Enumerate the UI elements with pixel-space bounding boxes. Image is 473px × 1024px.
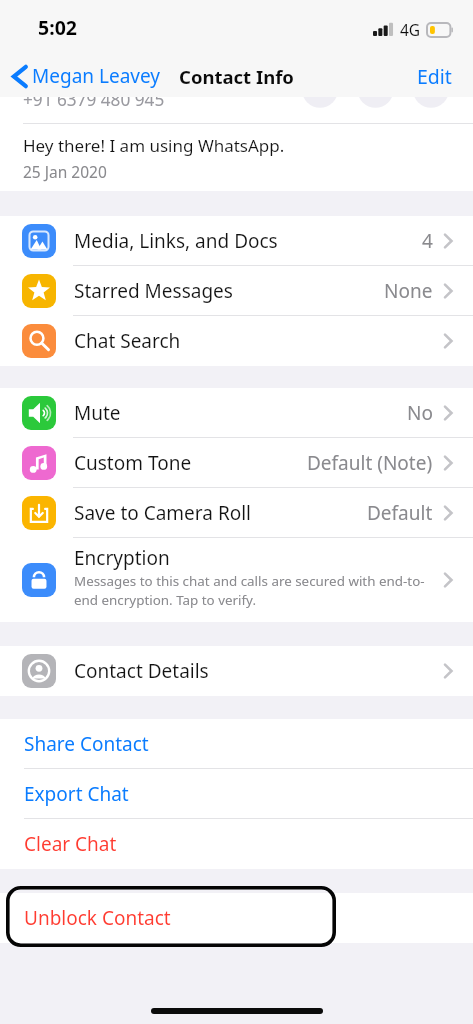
- button[interactable]: Chat Search: [0, 316, 473, 366]
- staticText: Media, Links, and Docs: [74, 228, 278, 254]
- staticText: No: [407, 400, 433, 426]
- staticText: Custom Tone: [74, 450, 192, 476]
- staticText: 25 Jan 2020: [23, 161, 107, 182]
- staticText: Unblock Contact: [24, 905, 171, 931]
- staticText: 4G: [400, 19, 421, 40]
- staticText: Export Chat: [24, 781, 129, 807]
- button[interactable]: Megan Leavey: [0, 59, 168, 93]
- staticText: Share Contact: [24, 731, 149, 757]
- staticText: Hey there! I am using WhatsApp.: [23, 134, 285, 157]
- button[interactable]: Encryption: [0, 538, 473, 622]
- button[interactable]: Contact Details: [0, 646, 473, 696]
- staticText: Chat Search: [74, 328, 181, 354]
- button[interactable]: Edit: [397, 57, 473, 96]
- button[interactable]: Export Chat: [0, 769, 473, 819]
- staticText: Save to Camera Roll: [74, 500, 252, 526]
- staticText: Edit: [417, 63, 452, 90]
- staticText: Default (Note): [307, 450, 433, 476]
- staticText: Default: [367, 500, 433, 526]
- button[interactable]: Custom Tone: [0, 438, 473, 488]
- staticText: Megan Leavey: [32, 63, 160, 89]
- staticText: None: [384, 278, 433, 304]
- button[interactable]: Share Contact: [0, 719, 473, 769]
- button[interactable]: Mute: [0, 388, 473, 438]
- staticText: Messages to this chat and calls are secu…: [74, 572, 433, 609]
- staticText: Contact Info: [179, 64, 294, 89]
- staticText: 4: [422, 228, 433, 254]
- button[interactable]: Starred Messages: [0, 266, 473, 316]
- staticText: Clear Chat: [24, 831, 117, 857]
- staticText: +91 6379 480 945: [23, 97, 165, 111]
- button[interactable]: Media, Links, and Docs: [0, 216, 473, 266]
- button[interactable]: Save to Camera Roll: [0, 488, 473, 538]
- staticText: Contact Details: [74, 658, 209, 684]
- staticText: Starred Messages: [74, 278, 233, 304]
- button[interactable]: Clear Chat: [0, 819, 473, 869]
- button[interactable]: Unblock Contact: [0, 893, 473, 943]
- staticText: Encryption: [74, 545, 170, 571]
- staticText: 5:02: [38, 14, 77, 41]
- staticText: Mute: [74, 400, 121, 426]
